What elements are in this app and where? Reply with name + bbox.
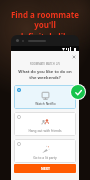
- staticText: definitely like: [18, 31, 73, 42]
- button[interactable]: Go to a lit party: [14, 139, 76, 163]
- staticText: Find a roommate you'll: [5, 9, 85, 30]
- button[interactable]: Close: [72, 55, 76, 59]
- staticText: ROOMMATE MATCH 2/5: [14, 62, 76, 66]
- staticText: NEXT: [41, 166, 50, 171]
- staticText: Watch Netflix: [35, 102, 56, 106]
- button[interactable]: Selected: [71, 85, 85, 99]
- staticText: Go to a lit party: [33, 156, 57, 160]
- staticText: What do you like to do on the weekends?: [18, 69, 72, 80]
- staticText: Hang out with friends: [28, 129, 62, 133]
- button[interactable]: Watch Netflix: [14, 85, 76, 109]
- button[interactable]: NEXT: [14, 164, 76, 173]
- button[interactable]: Hang out with friends: [14, 112, 76, 136]
